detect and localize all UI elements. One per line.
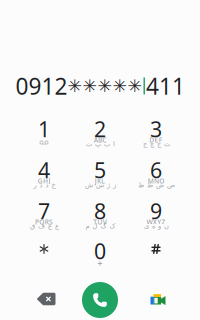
staticText: 3 (150, 115, 162, 143)
button[interactable]: 3 (129, 118, 183, 156)
staticText: ن و ه ی (143, 222, 168, 230)
staticText: ع غ ف ق (29, 222, 58, 230)
staticText: 6 (150, 156, 162, 184)
staticText: 4 (38, 156, 50, 184)
staticText: 411 (146, 71, 185, 101)
button[interactable]: Delete (22, 281, 70, 317)
staticText: ز ژ س ش (84, 181, 115, 189)
button[interactable]: 1 (17, 118, 71, 156)
staticText: ص ض ط ظ (137, 181, 174, 189)
staticText: 5 (94, 156, 106, 184)
button[interactable]: 6 (129, 159, 183, 197)
button[interactable]: Pound (129, 240, 183, 278)
staticText: TUV (93, 217, 107, 226)
button[interactable]: 0 (73, 240, 127, 278)
staticText: 9 (150, 197, 162, 225)
staticText: ک گ ل م (85, 222, 115, 230)
button[interactable]: 9 (129, 200, 183, 238)
staticText: WXYZ (146, 217, 165, 226)
staticText: 0912 (15, 71, 67, 101)
staticText: PQRS (35, 217, 53, 226)
staticText: JKL (95, 176, 105, 185)
button[interactable]: Star (17, 240, 71, 278)
staticText: GHI (38, 176, 50, 185)
staticText: ث ج چ ح (142, 140, 169, 148)
staticText: 8 (94, 197, 106, 225)
staticText: ✳✳✳✳✳ (67, 76, 142, 96)
button[interactable]: Call (78, 280, 122, 320)
button[interactable]: 7 (17, 200, 71, 238)
staticText: خ د ذ ر (33, 181, 55, 189)
button[interactable]: 8 (73, 200, 127, 238)
staticText: 1 (38, 115, 50, 143)
staticText: MNO (148, 176, 164, 185)
staticText: 2 (94, 115, 106, 143)
button[interactable]: Video call (136, 281, 180, 317)
button[interactable]: 4 (17, 159, 71, 197)
staticText: 7 (38, 197, 50, 225)
staticText: DEF (149, 135, 163, 144)
staticText: ABC (94, 135, 106, 144)
staticText: ا ب پ ت (85, 140, 114, 148)
staticText: 0 (94, 237, 106, 265)
button[interactable]: 2 (73, 118, 127, 156)
button[interactable]: 5 (73, 159, 127, 197)
